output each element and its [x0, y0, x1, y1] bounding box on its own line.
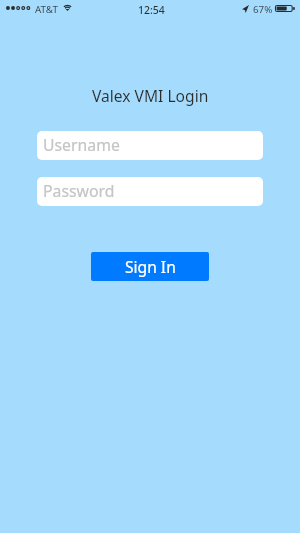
staticText: Username: [43, 134, 120, 156]
other: Location services active: [242, 5, 249, 13]
staticText: Password: [43, 180, 115, 202]
button[interactable]: Password: [37, 177, 263, 206]
staticText: Sign In: [125, 256, 176, 277]
button[interactable]: Sign In: [91, 252, 209, 281]
button[interactable]: Username: [37, 131, 263, 160]
other: Signal strength: [6, 6, 32, 10]
staticText: 12:54: [138, 3, 165, 17]
staticText: Valex VMI Login: [92, 85, 209, 106]
staticText: AT&T: [35, 3, 58, 16]
other: Wi-Fi: [63, 4, 72, 11]
other: Battery 67 percent: [275, 5, 295, 12]
staticText: 67%: [253, 3, 273, 16]
